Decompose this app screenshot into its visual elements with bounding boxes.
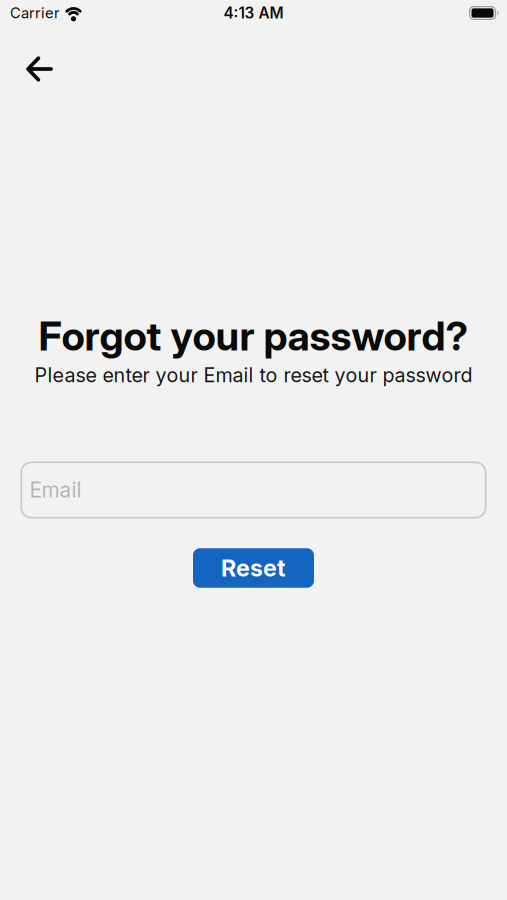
staticText: Email xyxy=(29,477,81,503)
staticText: Reset xyxy=(221,554,286,582)
button[interactable]: Reset xyxy=(193,548,314,588)
button[interactable] xyxy=(16,48,62,90)
button[interactable]: Email xyxy=(20,461,486,518)
staticText: Carrier xyxy=(10,4,60,22)
staticText: Please enter your Email to reset your pa… xyxy=(34,363,472,387)
staticText: 4:13 AM xyxy=(223,4,283,22)
staticText: Forgot your password? xyxy=(38,312,468,360)
